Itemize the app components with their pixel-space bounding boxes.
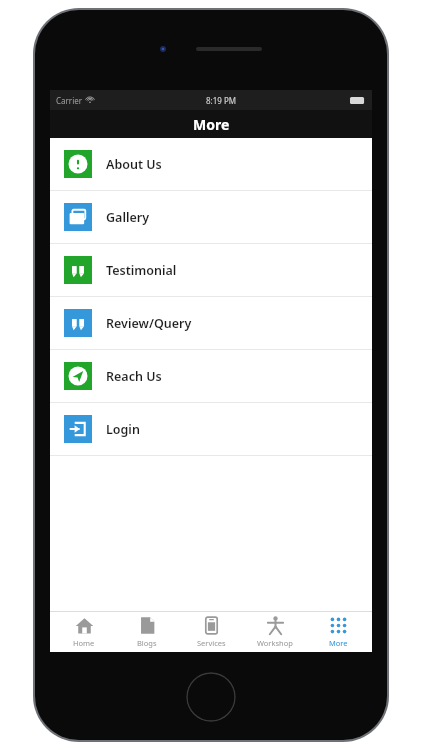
- staticText: Carrier: [56, 95, 83, 106]
- staticText: Home: [73, 638, 95, 648]
- staticText: Services: [197, 638, 226, 648]
- button[interactable]: Services: [181, 612, 241, 652]
- button[interactable]: Blogs: [117, 612, 177, 652]
- staticText: Review/Query: [106, 315, 192, 332]
- staticText: 8:19 PM: [206, 95, 237, 106]
- button[interactable]: Reach Us: [50, 350, 372, 403]
- staticText: More: [193, 115, 230, 134]
- button[interactable]: Login: [50, 403, 372, 456]
- staticText: Blogs: [137, 638, 157, 648]
- button[interactable]: Testimonial: [50, 244, 372, 297]
- button[interactable]: Home: [54, 612, 114, 652]
- staticText: Testimonial: [106, 262, 177, 279]
- staticText: More: [329, 638, 348, 648]
- button[interactable]: More: [308, 612, 368, 652]
- button[interactable]: Workshop: [245, 612, 305, 652]
- button[interactable]: About Us: [50, 138, 372, 191]
- button[interactable]: Gallery: [50, 191, 372, 244]
- button[interactable]: Review/Query: [50, 297, 372, 350]
- staticText: Gallery: [106, 209, 150, 226]
- staticText: Login: [106, 421, 140, 438]
- staticText: Workshop: [257, 638, 293, 648]
- staticText: Reach Us: [106, 368, 162, 385]
- staticText: About Us: [106, 156, 162, 173]
